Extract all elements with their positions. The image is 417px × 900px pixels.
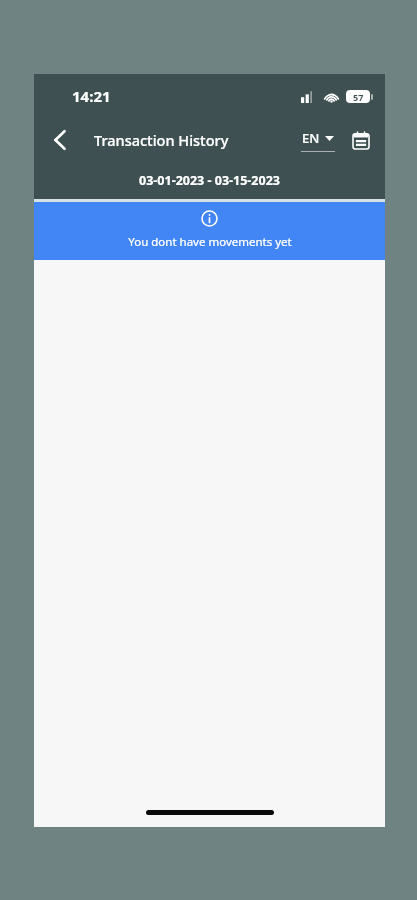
button[interactable]: Back xyxy=(40,120,80,160)
button[interactable]: You dont have movements yet xyxy=(34,202,385,260)
staticText: EN xyxy=(302,129,320,147)
button[interactable]: 03-01-2023 - 03-15-2023 xyxy=(34,162,385,199)
button[interactable]: Select date range xyxy=(347,126,375,154)
staticText: 57 xyxy=(353,91,364,103)
button[interactable]: EN xyxy=(301,129,335,152)
staticText: Transaction History xyxy=(94,130,229,150)
staticText: You dont have movements yet xyxy=(128,234,292,250)
staticText: 03-01-2023 - 03-15-2023 xyxy=(139,172,280,189)
staticText: 14:21 xyxy=(72,86,111,106)
